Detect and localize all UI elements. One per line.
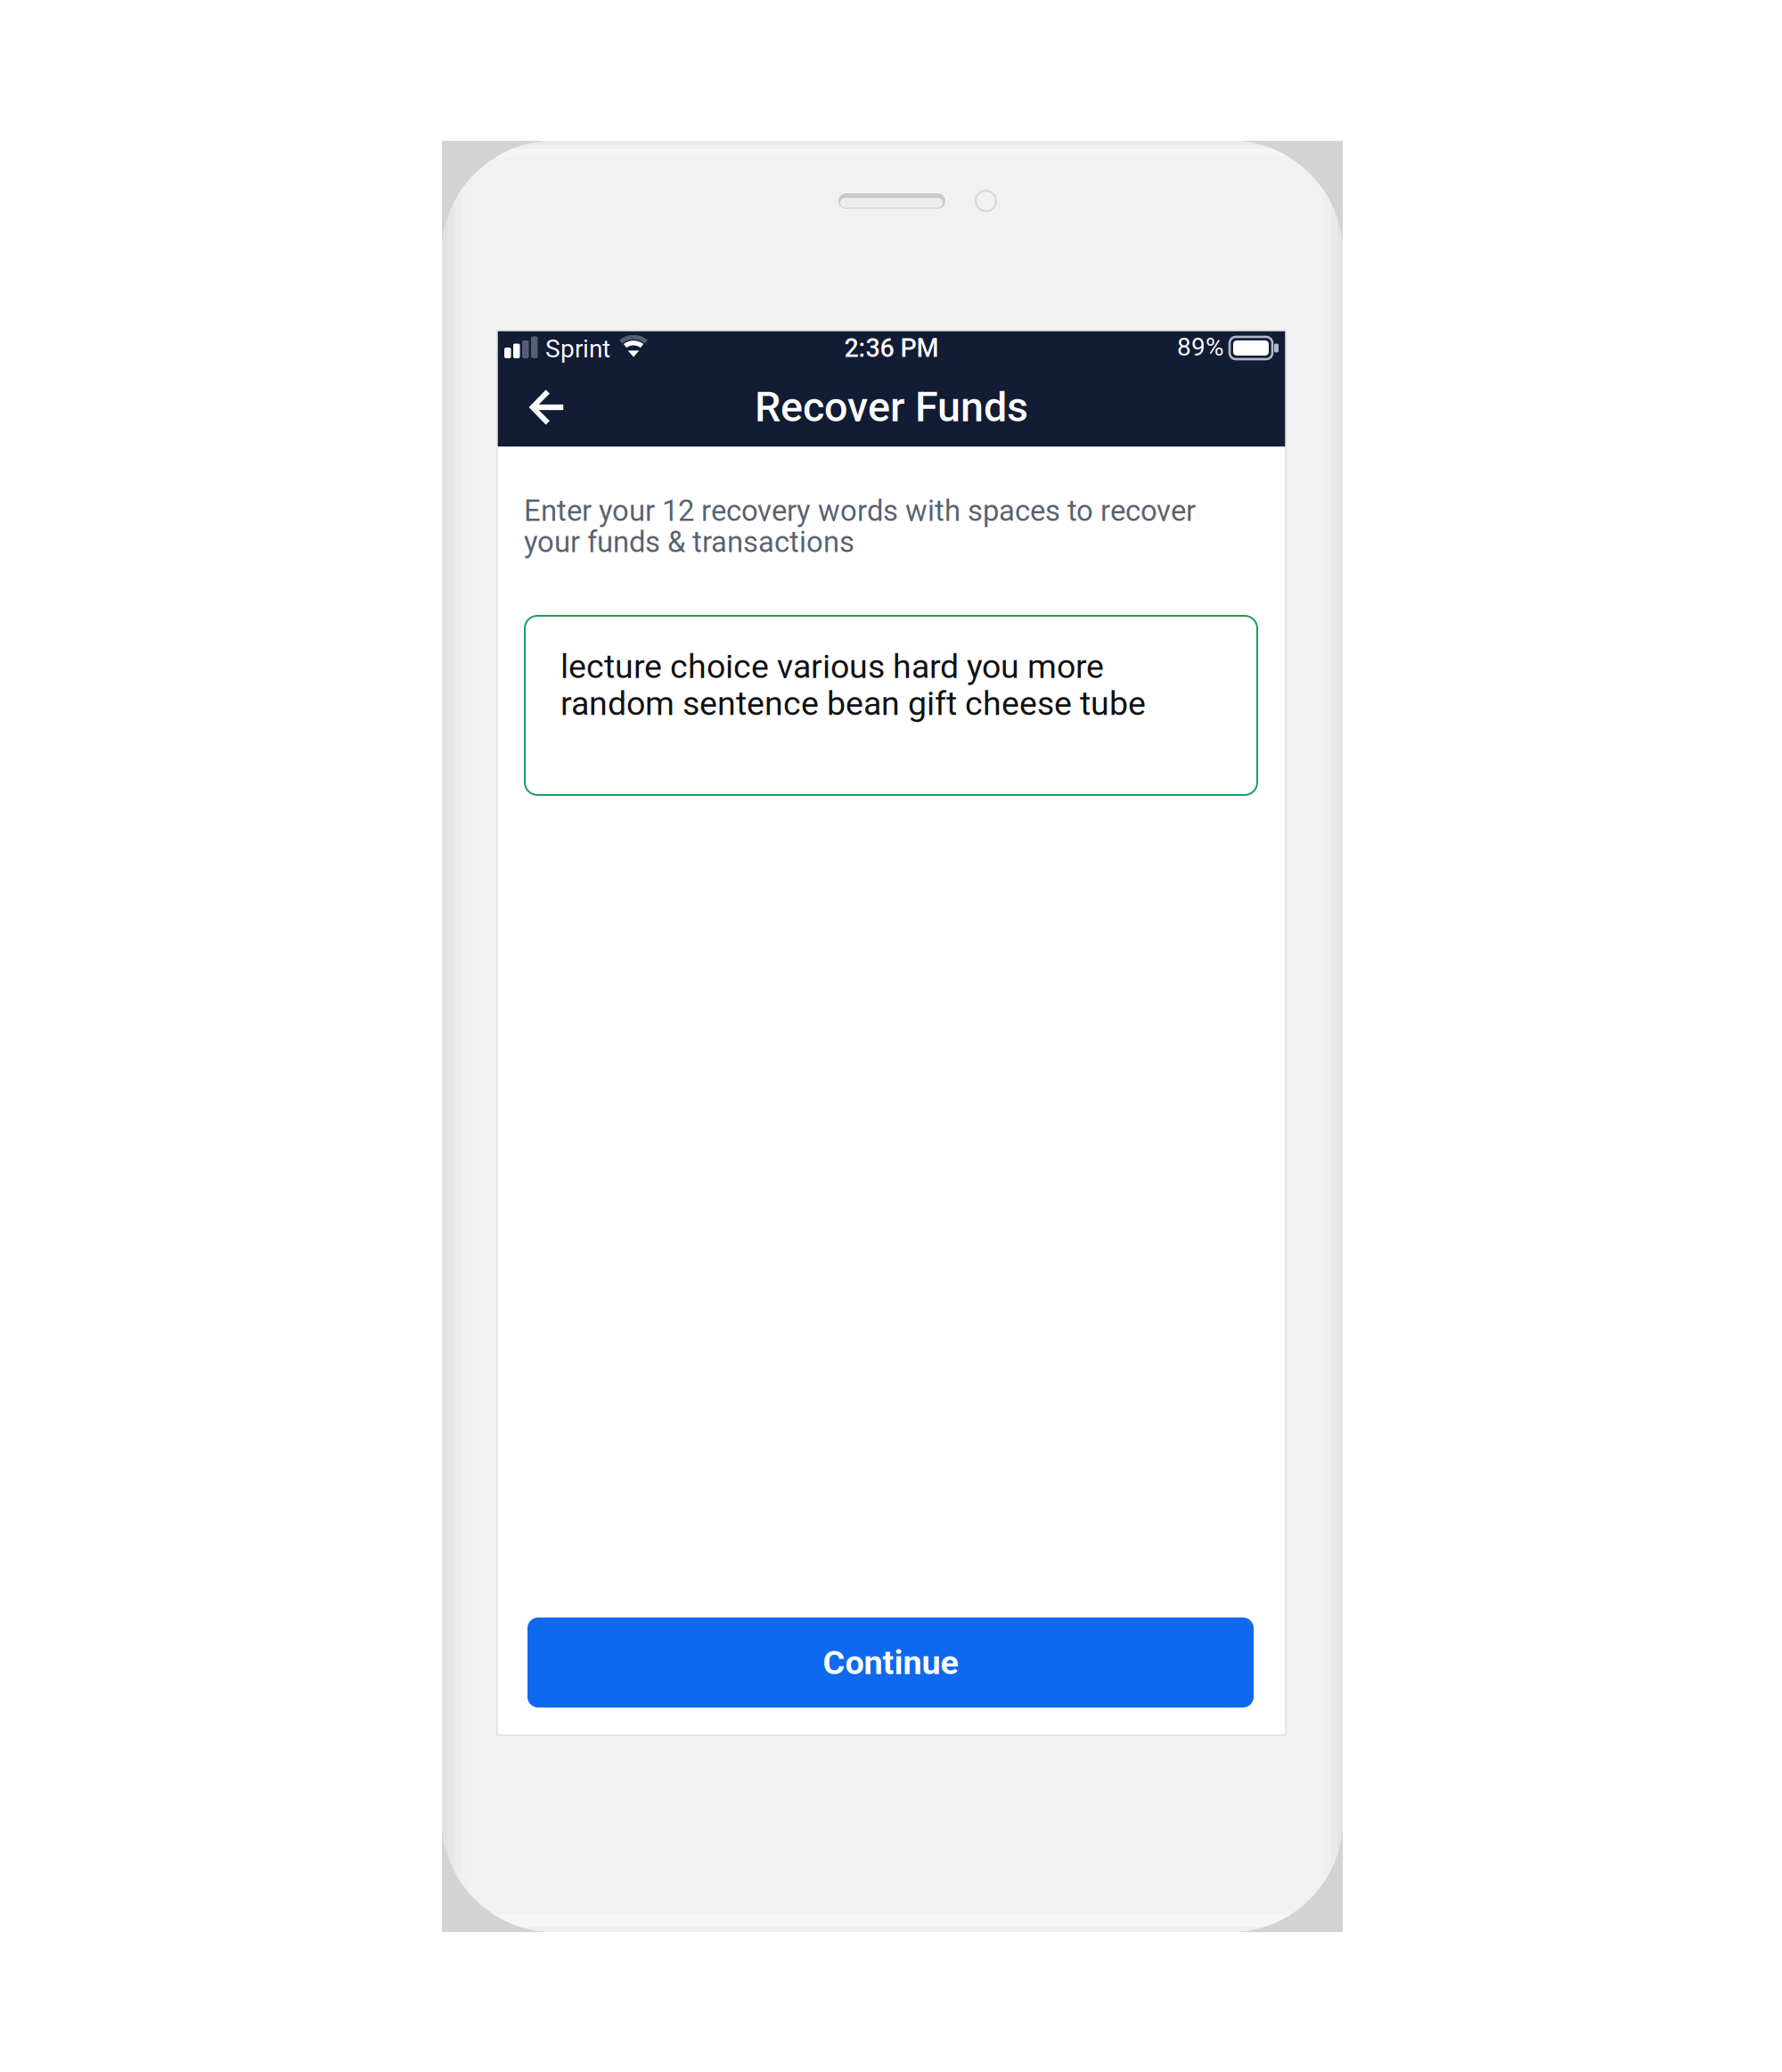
staticText: lecture choice various hard you more ran… xyxy=(560,647,1146,723)
staticText: 2:36 PM xyxy=(844,333,939,363)
staticText: Enter your 12 recovery words with spaces… xyxy=(524,494,1196,559)
button[interactable]: Back xyxy=(512,373,580,440)
staticText: Recover Funds xyxy=(755,383,1028,432)
button[interactable]: Continue xyxy=(527,1617,1254,1708)
staticText: Continue xyxy=(823,1643,958,1682)
staticText: Sprint xyxy=(545,334,610,363)
staticText: 89% xyxy=(1177,332,1224,362)
